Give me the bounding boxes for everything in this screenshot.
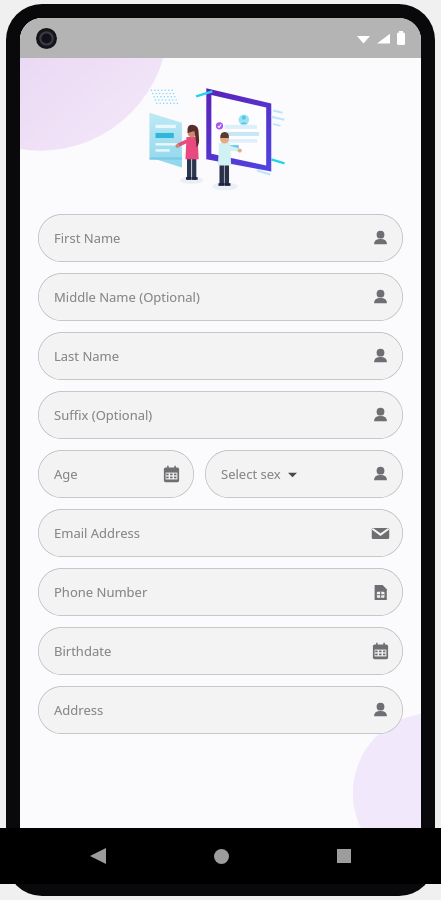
staticText: Phone Number (54, 583, 148, 601)
button[interactable]: Last Name (38, 332, 403, 380)
button[interactable]: Back (76, 834, 120, 878)
button[interactable]: Home (199, 834, 243, 878)
staticText: Select sex (221, 465, 281, 483)
button[interactable]: Age (38, 450, 194, 498)
button[interactable]: Middle Name (Optional) (38, 273, 403, 321)
button[interactable]: Address (38, 686, 403, 734)
staticText: Email Address (54, 524, 140, 542)
staticText: Age (54, 465, 78, 483)
staticText: Middle Name (Optional) (54, 288, 200, 306)
button[interactable]: Select sex (205, 450, 403, 498)
staticText: Address (54, 701, 104, 719)
staticText: Birthdate (54, 642, 112, 660)
button[interactable]: Phone Number (38, 568, 403, 616)
staticText: First Name (54, 229, 121, 247)
button[interactable]: Birthdate (38, 627, 403, 675)
staticText: Suffix (Optional) (54, 406, 153, 424)
button[interactable]: First Name (38, 214, 403, 262)
button[interactable]: Suffix (Optional) (38, 391, 403, 439)
button[interactable]: Email Address (38, 509, 403, 557)
button[interactable]: Recent apps (322, 834, 366, 878)
staticText: Last Name (54, 347, 120, 365)
